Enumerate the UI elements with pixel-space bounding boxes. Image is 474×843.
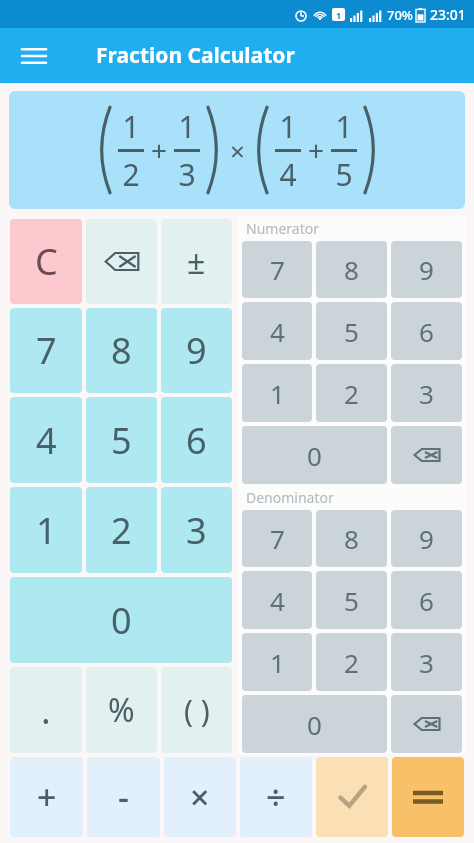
staticText: 8 (111, 326, 132, 375)
button[interactable]: 1 (10, 487, 82, 573)
button[interactable]: C (10, 219, 82, 304)
staticText: 0 (111, 596, 132, 645)
button[interactable]: Confirm (316, 757, 388, 837)
button[interactable]: 1 (242, 633, 312, 691)
staticText: 2 (111, 506, 132, 555)
staticText: 9 (419, 521, 434, 556)
button[interactable]: 4 (242, 302, 312, 360)
staticText: 1 (335, 106, 353, 147)
button[interactable]: % (86, 667, 157, 753)
staticText: + (308, 131, 325, 169)
button[interactable]: ± (161, 219, 232, 304)
button[interactable]: Backspace (86, 219, 157, 304)
staticText: ( ) (184, 690, 210, 731)
staticText: 1 (270, 645, 285, 680)
button[interactable]: 5 (86, 397, 157, 483)
button[interactable]: . (10, 667, 82, 753)
button[interactable]: 6 (391, 571, 462, 629)
button[interactable]: Minus (87, 757, 160, 837)
button[interactable]: 3 (161, 487, 232, 573)
staticText: 9 (419, 252, 434, 287)
button[interactable]: Multiply (164, 757, 236, 837)
button[interactable]: 7 (10, 308, 82, 393)
staticText: 6 (419, 583, 434, 618)
button[interactable]: 9 (161, 308, 232, 393)
staticText: ± (187, 240, 206, 284)
staticText: 2 (344, 376, 359, 411)
button[interactable]: Backspace Denominator (391, 695, 462, 753)
button[interactable]: Divide (240, 757, 312, 837)
staticText: 9 (186, 326, 207, 375)
button[interactable]: 9 (391, 510, 462, 567)
button[interactable]: 2 (316, 364, 387, 422)
button[interactable]: Equals (392, 757, 464, 837)
button[interactable]: ( ) (161, 667, 232, 753)
staticText: 1 (336, 9, 342, 21)
staticText: 5 (111, 416, 132, 465)
staticText: Numerator (246, 219, 319, 238)
staticText: 7 (270, 521, 285, 556)
staticText: 6 (419, 314, 434, 349)
button[interactable]: 7 (242, 241, 312, 298)
staticText: 5 (335, 154, 353, 195)
staticText: 8 (344, 252, 359, 287)
staticText: 4 (270, 583, 285, 618)
staticText: Fraction Calculator (96, 41, 295, 70)
button[interactable]: 6 (391, 302, 462, 360)
staticText: 3 (178, 154, 196, 195)
staticText: 3 (419, 645, 434, 680)
staticText: 4 (279, 154, 297, 195)
staticText: 1 (279, 106, 297, 147)
staticText: × (190, 774, 210, 820)
staticText: Denominator (246, 488, 334, 507)
staticText: + (37, 774, 57, 820)
staticText: ÷ (266, 774, 286, 820)
staticText: 2 (344, 645, 359, 680)
staticText: 7 (36, 326, 57, 375)
button[interactable]: Open navigation menu (14, 36, 54, 76)
staticText: 0 (307, 438, 322, 473)
staticText: 4 (270, 314, 285, 349)
staticText: 3 (186, 506, 207, 555)
button[interactable]: 5 (316, 571, 387, 629)
button[interactable]: Plus (10, 757, 83, 837)
button[interactable]: 9 (391, 241, 462, 298)
button[interactable]: 0 (242, 695, 387, 753)
staticText: 4 (36, 416, 57, 465)
button[interactable]: 4 (10, 397, 82, 483)
staticText: × (230, 133, 245, 168)
staticText: 6 (186, 416, 207, 465)
button[interactable]: 0 (10, 577, 232, 663)
staticText: % (108, 688, 135, 732)
staticText: 2 (122, 154, 140, 195)
staticText: - (118, 774, 129, 820)
button[interactable]: 6 (161, 397, 232, 483)
button[interactable]: 8 (316, 241, 387, 298)
staticText: 1 (36, 506, 57, 555)
staticText: 1 (270, 376, 285, 411)
button[interactable]: 8 (86, 308, 157, 393)
button[interactable]: 2 (316, 633, 387, 691)
button[interactable]: 4 (242, 571, 312, 629)
button[interactable]: Backspace Numerator (391, 426, 462, 484)
button[interactable]: 2 (86, 487, 157, 573)
staticText: 23:01 (430, 5, 466, 24)
button[interactable]: 7 (242, 510, 312, 567)
staticText: 1 (178, 106, 196, 147)
staticText: 7 (270, 252, 285, 287)
staticText: 5 (344, 314, 359, 349)
staticText: 70% (387, 6, 413, 24)
staticText: C (35, 237, 58, 286)
staticText: 0 (307, 707, 322, 742)
staticText: + (151, 131, 168, 169)
staticText: . (41, 686, 51, 735)
staticText: 1 (122, 106, 140, 147)
button[interactable]: 1 (9, 91, 465, 209)
staticText: 3 (419, 376, 434, 411)
button[interactable]: 5 (316, 302, 387, 360)
button[interactable]: 1 (242, 364, 312, 422)
button[interactable]: 0 (242, 426, 387, 484)
button[interactable]: 8 (316, 510, 387, 567)
button[interactable]: 3 (391, 633, 462, 691)
button[interactable]: 3 (391, 364, 462, 422)
